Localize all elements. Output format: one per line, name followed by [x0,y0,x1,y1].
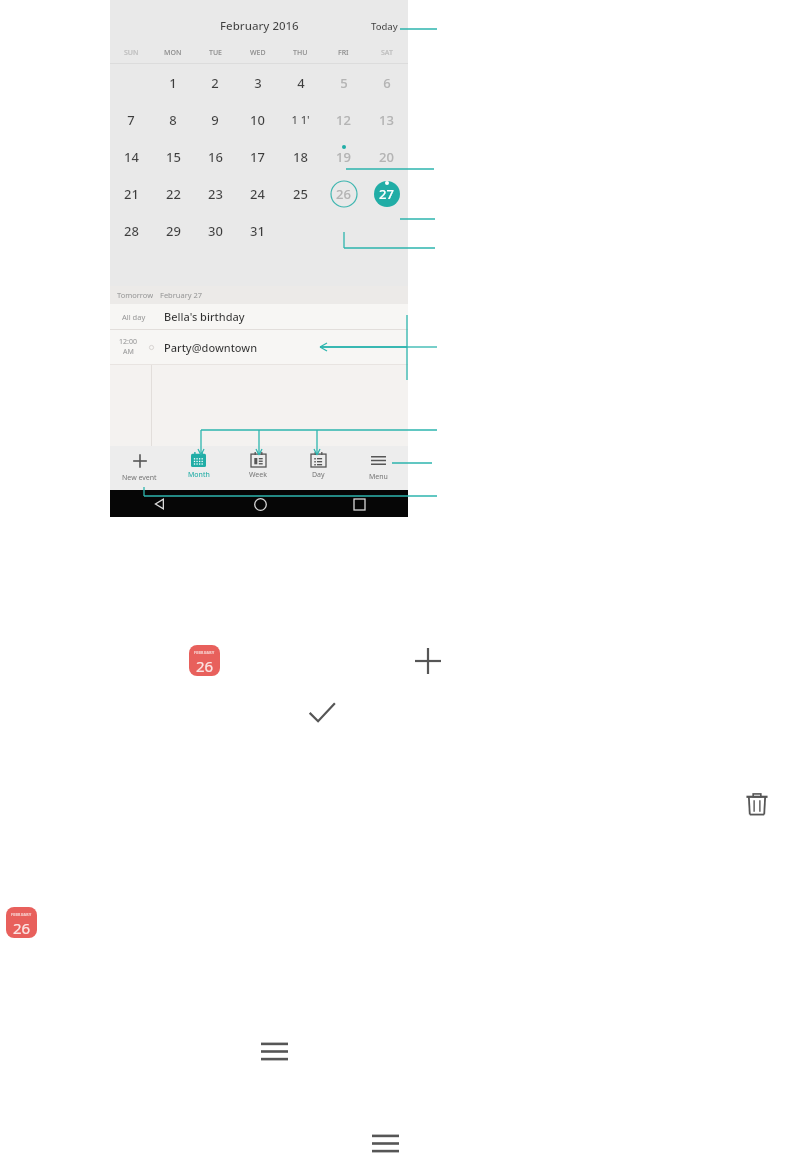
button[interactable]: 13 [365,101,408,138]
button[interactable]: 12:00 [110,330,408,364]
button[interactable]: Menu [371,1132,399,1154]
button[interactable]: Recents [347,492,371,516]
staticText: 16 [208,148,223,166]
staticText: 19 [336,148,351,166]
staticText: 2 [211,74,219,92]
staticText: 22 [166,185,181,203]
button[interactable]: Calendar app [189,645,220,676]
button[interactable]: 3 [236,64,279,101]
button[interactable]: 16 [194,138,236,175]
staticText: MON [164,48,182,58]
button[interactable]: 6 [365,64,408,101]
staticText: 12 [336,111,351,129]
staticText: WED [250,48,266,58]
button[interactable]: 17 [236,138,279,175]
button[interactable]: Day [288,446,348,490]
button[interactable]: 30 [194,212,236,249]
button[interactable]: 23 [194,175,236,212]
staticText: 4 [297,74,305,92]
staticText: 25 [293,185,308,203]
staticText: 28 [124,222,139,240]
button[interactable]: 19 [322,138,365,175]
button[interactable]: Delete [743,790,771,818]
staticText: 5 [340,74,348,92]
button[interactable]: Today [361,16,408,37]
button[interactable]: Week [228,446,288,490]
button[interactable]: 8 [152,101,194,138]
staticText: 21 [124,185,139,203]
staticText: 26 [336,185,351,203]
staticText: 14 [124,148,139,166]
button[interactable]: Home [248,492,272,516]
button[interactable]: 15 [152,138,194,175]
staticText: 13 [379,111,394,129]
staticText: 1 [169,74,177,92]
button[interactable]: 1 [152,64,194,101]
button [322,212,365,249]
button[interactable]: 25 [279,175,322,212]
staticText: Party@downtown [164,340,258,355]
button[interactable]: New event [110,446,169,490]
staticText: Tomorrow [117,290,154,300]
staticText: 6 [383,74,391,92]
button[interactable]: 14 [110,138,152,175]
staticText: 15 [166,148,181,166]
staticText: All day [122,312,146,322]
staticText: 31 [250,222,265,240]
button[interactable]: 12 [322,101,365,138]
staticText: 3 [254,74,262,92]
button[interactable]: 9 [194,101,236,138]
button[interactable]: 29 [152,212,194,249]
staticText: Day [312,470,325,480]
button[interactable]: 4 [279,64,322,101]
button[interactable]: 10 [236,101,279,138]
staticText: February 27 [160,290,203,300]
button[interactable]: 2 [194,64,236,101]
staticText: 26 [13,918,31,938]
button[interactable]: 20 [365,138,408,175]
button[interactable]: Add [413,646,443,676]
button[interactable]: Calendar app [6,907,37,938]
button[interactable]: All day [110,304,408,329]
staticText: FEBRUARY [194,650,215,655]
button[interactable]: Back [148,492,172,516]
staticText: 26 [196,656,214,676]
button[interactable]: 18 [279,138,322,175]
staticText: 30 [208,222,223,240]
staticText: Bella's birthday [164,309,245,324]
staticText: 20 [379,148,394,166]
button[interactable]: 31 [236,212,279,249]
button[interactable]: 24 [236,175,279,212]
staticText: FRI [338,48,349,58]
button [365,212,408,249]
button[interactable]: 28 [110,212,152,249]
button[interactable]: Menu [260,1040,288,1062]
button[interactable]: 26 [322,175,365,212]
staticText: 1 1' [291,112,310,127]
button[interactable]: 1 1' [279,101,322,138]
staticText: FEBRUARY [11,912,32,917]
button[interactable]: 22 [152,175,194,212]
staticText: SAT [381,48,393,58]
button[interactable]: 27 [365,175,408,212]
staticText: 17 [250,148,265,166]
staticText: 8 [169,111,177,129]
button[interactable]: Month [169,446,228,490]
staticText: Menu [369,472,388,482]
staticText: 10 [250,111,265,129]
staticText: 7 [127,111,135,129]
button[interactable]: Menu [348,446,408,490]
button[interactable]: 21 [110,175,152,212]
button[interactable]: Confirm [306,698,338,730]
staticText: New event [122,473,157,483]
staticText: 27 [379,185,394,203]
button[interactable]: 5 [322,64,365,101]
button[interactable]: 7 [110,101,152,138]
